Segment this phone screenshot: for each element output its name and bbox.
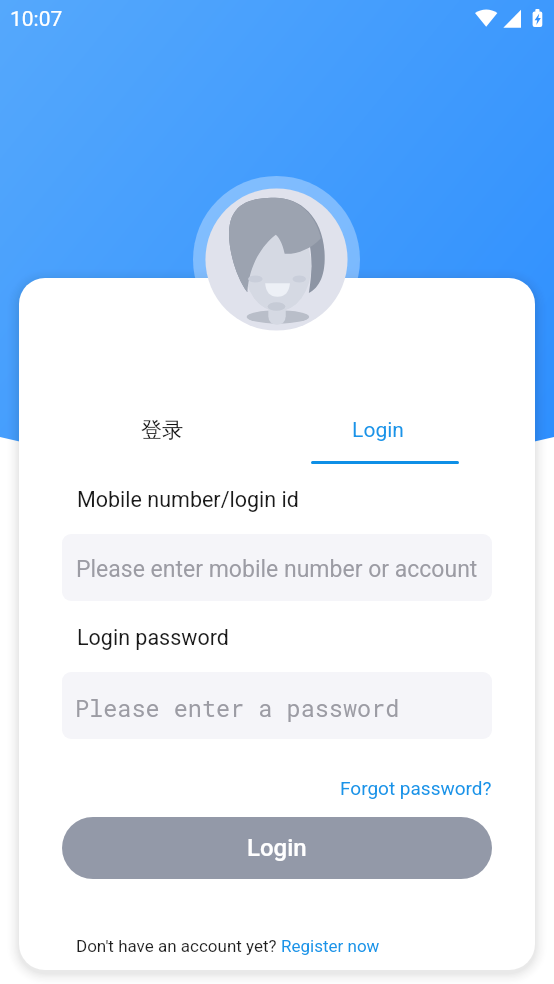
staticText: Login [352,418,404,443]
button[interactable]: Forgot password? [336,772,492,804]
staticText: 10:07 [10,7,63,32]
button[interactable]: Login [318,402,438,458]
staticText: Login [247,834,307,862]
button[interactable]: Register now [281,936,380,956]
staticText: 登录 [141,417,183,443]
button[interactable]: Please enter a password [62,672,492,739]
button[interactable]: Login [62,817,492,879]
staticText: Mobile number/login id [77,487,299,512]
other: Profile avatar [193,176,360,343]
staticText: Login password [77,625,229,650]
button[interactable]: Please enter mobile number or account [62,534,492,601]
staticText: Don't have an account yet? [76,936,281,956]
staticText: Forgot password? [340,777,492,799]
button[interactable]: 登录 [102,402,222,458]
staticText: Please enter mobile number or account [76,556,478,583]
staticText: Please enter a password [75,692,400,723]
